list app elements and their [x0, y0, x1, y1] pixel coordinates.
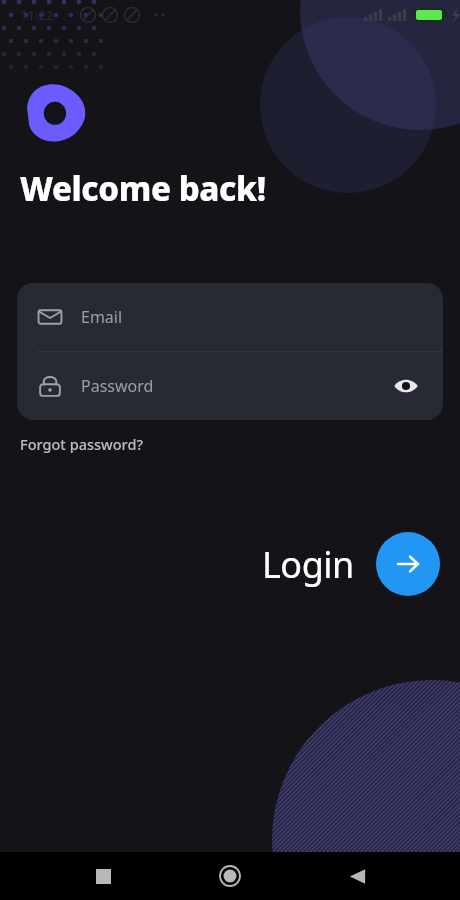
- button[interactable]: Recent apps: [79, 852, 127, 900]
- staticText: Welcome back!: [20, 166, 266, 211]
- staticText: Password: [81, 375, 154, 397]
- staticText: Email: [81, 306, 123, 328]
- button[interactable]: Email: [17, 283, 443, 351]
- staticText: Login: [262, 540, 354, 589]
- button[interactable]: Login: [262, 532, 440, 596]
- staticText: 11:22: [20, 6, 54, 24]
- button[interactable]: Home: [206, 852, 254, 900]
- button[interactable]: Login: [376, 532, 440, 596]
- button[interactable]: Forgot password?: [20, 434, 143, 454]
- button[interactable]: Show password: [389, 369, 423, 403]
- button[interactable]: Back: [333, 852, 381, 900]
- button[interactable]: Password: [17, 352, 443, 420]
- staticText: Forgot password?: [20, 434, 143, 454]
